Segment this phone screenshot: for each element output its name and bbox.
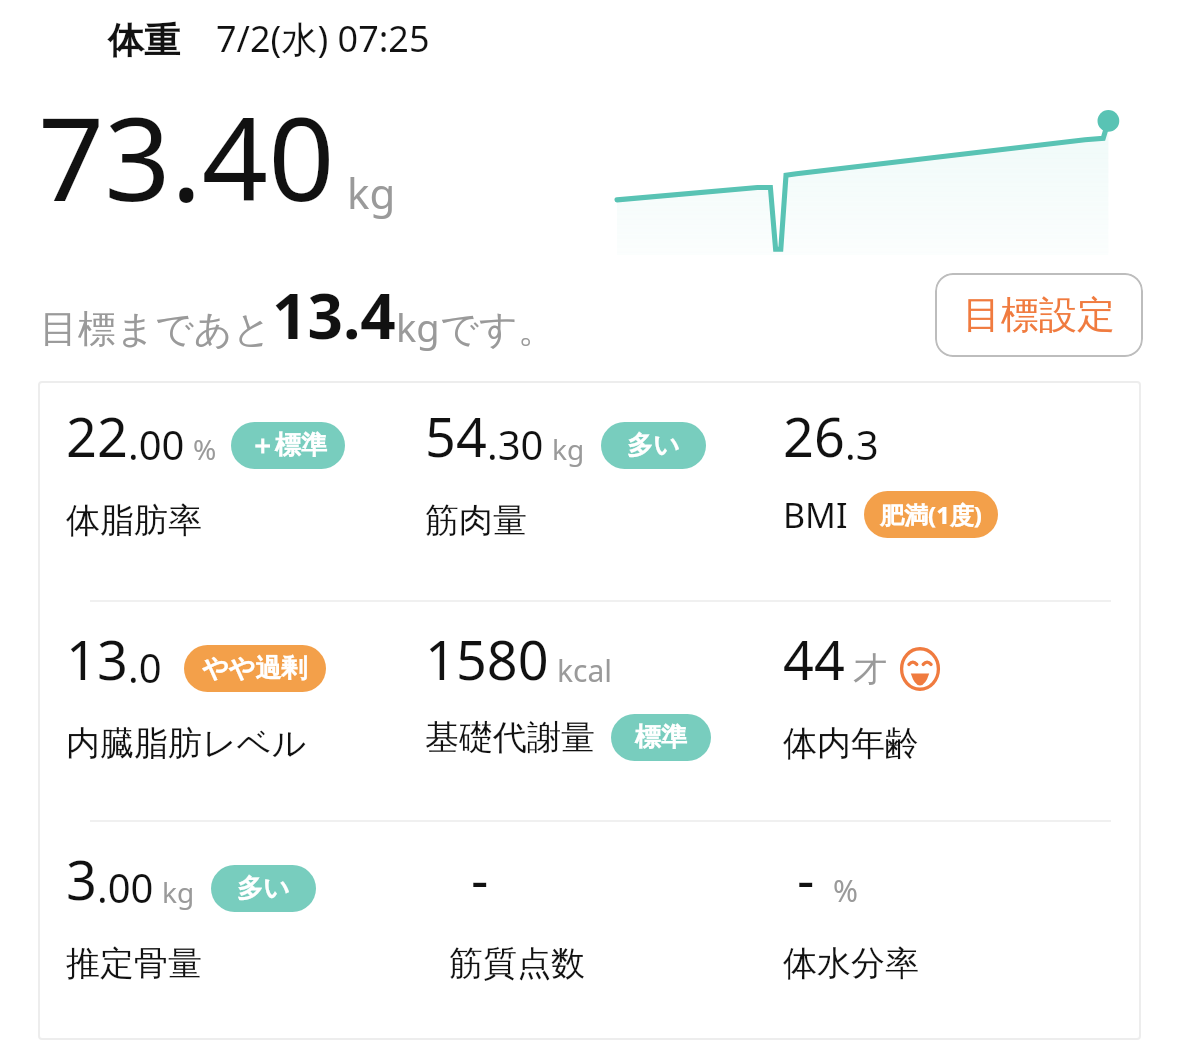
staticText: 13 [66, 622, 128, 696]
staticText: .00 [128, 417, 185, 471]
staticText: 才 [853, 648, 887, 691]
button[interactable]: - [783, 842, 1141, 985]
staticText: .0 [128, 640, 162, 694]
staticText: 13.4 [272, 273, 396, 357]
button[interactable]: 3 [66, 842, 425, 985]
button[interactable]: 1580 [425, 622, 783, 761]
staticText: 肥満(1度) [880, 498, 982, 531]
staticText: 多い [627, 429, 680, 462]
staticText: .30 [487, 417, 544, 471]
staticText: kg [396, 301, 440, 353]
staticText: 体内年齢 [783, 722, 919, 765]
other: Body age rating [897, 646, 943, 692]
staticText: 体脂肪率 [66, 499, 202, 542]
button[interactable]: 54 [425, 399, 783, 542]
staticText: 目標設定 [963, 291, 1115, 339]
staticText: kg [552, 430, 585, 468]
staticText: 筋肉量 [425, 499, 527, 542]
staticText: 目標まであと [40, 305, 272, 353]
staticText: 体水分率 [783, 942, 919, 985]
button[interactable]: 26 [783, 399, 1141, 538]
staticText: 22 [66, 399, 128, 473]
staticText: kg [162, 873, 195, 911]
button[interactable]: 22 [66, 399, 425, 542]
staticText: 推定骨量 [66, 942, 202, 985]
staticText: 3 [66, 842, 97, 916]
staticText: 1580 [425, 622, 549, 696]
staticText: kcal [557, 650, 612, 691]
button[interactable]: 目標設定 [935, 273, 1143, 357]
staticText: 7/2(水) 07:25 [216, 14, 430, 63]
staticText: 多い [237, 872, 290, 905]
staticText: 標準 [635, 721, 687, 754]
staticText: 基礎代謝量 [425, 716, 595, 759]
staticText: 26 [783, 399, 845, 473]
staticText: 44 [783, 622, 845, 696]
staticText: .00 [97, 860, 154, 914]
staticText: ＋標準 [249, 429, 327, 462]
staticText: です。 [440, 305, 556, 353]
staticText: 筋質点数 [449, 942, 585, 985]
staticText: 内臓脂肪レベル [66, 722, 307, 765]
staticText: 体重 [108, 18, 180, 63]
staticText: BMI [783, 492, 848, 538]
button[interactable]: 13 [66, 622, 425, 765]
staticText: 73.40 [38, 77, 335, 235]
staticText: やや過剰 [202, 652, 308, 685]
button[interactable]: - [425, 842, 783, 985]
staticText: kg [347, 164, 396, 221]
button[interactable]: 44 [783, 622, 1141, 765]
staticText: - [797, 842, 815, 916]
staticText: .3 [845, 417, 879, 471]
staticText: % [193, 430, 217, 468]
staticText: 54 [425, 399, 487, 473]
staticText: - [471, 842, 489, 916]
staticText: % [833, 870, 858, 911]
